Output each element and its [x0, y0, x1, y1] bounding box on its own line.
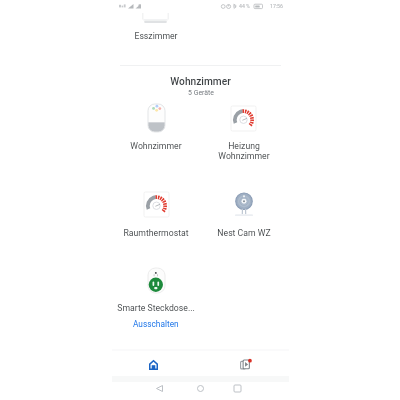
- staticText: Wohnzimmer: [170, 76, 231, 88]
- button[interactable]: Smarte Steckdose...: [112, 303, 200, 313]
- button[interactable]: Heizung Wohnzimmer: [200, 141, 288, 161]
- button[interactable]: Ausschalten: [118, 319, 194, 329]
- staticText: Smarte Steckdose...: [117, 303, 195, 313]
- staticText: 5 Geräte: [188, 89, 214, 97]
- button[interactable]: Feed: [200, 352, 289, 376]
- staticText: Wohnzimmer: [130, 141, 182, 151]
- button[interactable]: Home: [112, 352, 200, 376]
- staticText: Raumthermostat: [123, 228, 189, 238]
- staticText: Ausschalten: [133, 319, 179, 329]
- staticText: 44 %: [239, 3, 250, 9]
- staticText: 17:56: [270, 3, 283, 9]
- button[interactable]: Wohnzimmer: [112, 141, 200, 151]
- button[interactable]: Raumthermostat: [112, 228, 200, 238]
- button[interactable]: Nest Cam WZ: [200, 228, 288, 238]
- staticText: Nest Cam WZ: [217, 228, 271, 238]
- staticText: Heizung Wohnzimmer: [218, 141, 270, 161]
- button[interactable]: Esszimmer: [112, 31, 200, 41]
- staticText: Esszimmer: [134, 31, 178, 41]
